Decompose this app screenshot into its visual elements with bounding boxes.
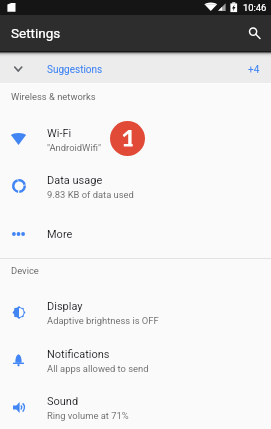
staticText: Suggestions [47, 64, 103, 76]
staticText: 10:46 [243, 2, 267, 13]
button[interactable]: Wi-Fi [0, 116, 271, 164]
staticText: More [47, 228, 73, 241]
staticText: Wireless & networks [11, 91, 96, 102]
staticText: Notifications [47, 348, 110, 361]
button[interactable]: More [0, 211, 271, 259]
staticText: All apps allowed to send [47, 363, 149, 374]
button[interactable]: Suggestions [0, 51, 271, 84]
staticText: "AndroidWifi" [47, 142, 101, 153]
staticText: Data usage [47, 174, 103, 187]
staticText: Adaptive brightness is OFF [47, 315, 159, 326]
button[interactable]: Notifications [0, 337, 271, 385]
button[interactable]: Search [235, 15, 271, 51]
staticText: Settings [11, 25, 61, 41]
button[interactable]: Display [0, 289, 271, 337]
staticText: Ring volume at 71% [47, 410, 129, 421]
staticText: Sound [47, 395, 79, 408]
staticText: Display [47, 300, 83, 313]
staticText: Device [11, 265, 39, 276]
staticText: Wi-Fi [47, 127, 72, 140]
button[interactable]: Sound [0, 384, 271, 429]
staticText: 9.83 KB of data used [47, 189, 134, 200]
staticText: +4 [248, 64, 260, 76]
button[interactable]: 1 notification [110, 121, 145, 156]
button[interactable]: Data usage [0, 163, 271, 211]
